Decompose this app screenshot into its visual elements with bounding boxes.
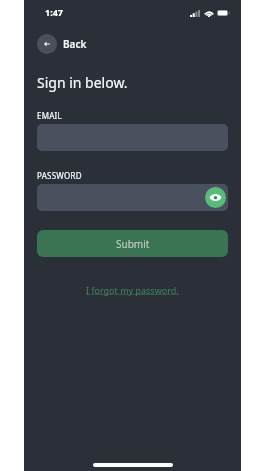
button[interactable]: Show password	[205, 187, 226, 208]
staticText: EMAIL	[37, 110, 62, 121]
staticText: PASSWORD	[37, 170, 82, 181]
staticText: Back	[63, 37, 87, 51]
staticText: Submit	[116, 237, 150, 251]
staticText: 1:47	[45, 6, 63, 18]
staticText: Sign in below.	[37, 73, 128, 92]
button[interactable]: I forgot my password.	[82, 281, 183, 299]
button[interactable]: Back	[37, 32, 87, 56]
button[interactable]: Submit	[37, 230, 228, 257]
button[interactable]: Password input	[37, 184, 228, 211]
